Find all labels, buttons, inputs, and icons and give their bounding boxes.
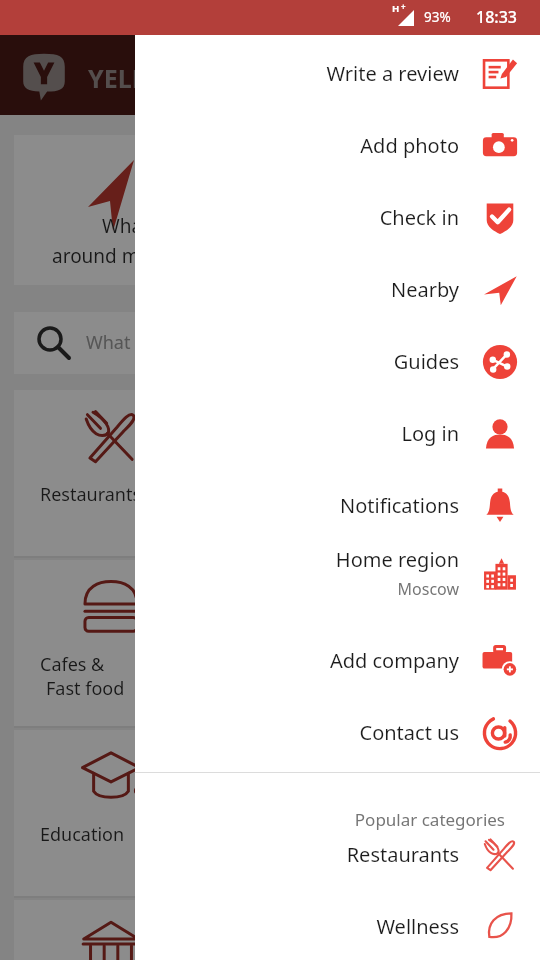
button[interactable]: Add company: [135, 625, 540, 697]
staticText: Restaurants: [40, 482, 142, 507]
staticText: Popular categories: [135, 808, 505, 831]
button[interactable]: Guides: [135, 326, 540, 398]
button[interactable]: Popular categories: [135, 790, 540, 852]
staticText: Add photo: [135, 132, 459, 159]
button[interactable]: Wellness: [135, 891, 540, 960]
button[interactable]: Nearby: [135, 254, 540, 326]
staticText: Notifications: [135, 492, 459, 519]
button[interactable]: Add photo: [135, 110, 540, 182]
staticText: Add company: [135, 647, 459, 674]
staticText: Log in: [135, 420, 459, 447]
staticText: around me?: [52, 243, 159, 269]
staticText: Write a review: [135, 60, 459, 87]
button[interactable]: Log in: [135, 398, 540, 470]
staticText: H: [392, 2, 400, 15]
button[interactable]: Write a review: [135, 38, 540, 110]
staticText: Restaurants: [135, 841, 459, 868]
staticText: Contact us: [135, 719, 459, 746]
staticText: YELL: [88, 61, 146, 95]
staticText: What is: [102, 213, 168, 239]
staticText: +: [401, 1, 406, 12]
staticText: 18:33: [476, 6, 517, 28]
button[interactable]: Restaurants: [135, 819, 540, 891]
button[interactable]: Contact us: [135, 697, 540, 769]
staticText: Education: [40, 822, 125, 847]
button[interactable]: Check in: [135, 182, 540, 254]
staticText: Nearby: [135, 276, 459, 303]
staticText: Guides: [135, 348, 459, 375]
staticText: Cafes &: [40, 652, 105, 677]
staticText: Check in: [135, 204, 459, 231]
button[interactable]: Home region: [135, 532, 540, 620]
staticText: 93%: [424, 8, 451, 26]
staticText: What are you looking for?: [86, 330, 303, 355]
staticText: Moscow: [135, 578, 459, 600]
staticText: Fast food: [46, 676, 125, 701]
staticText: Home region: [135, 546, 459, 573]
button[interactable]: Notifications: [135, 470, 540, 542]
staticText: Wellness: [135, 913, 459, 940]
